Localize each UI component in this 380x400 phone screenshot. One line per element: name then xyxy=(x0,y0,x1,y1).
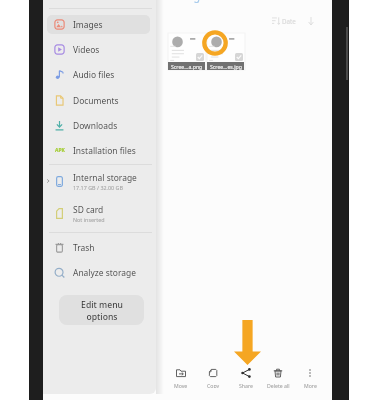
staticText: Installation files xyxy=(73,145,136,157)
button[interactable]: Selected xyxy=(235,53,243,61)
button[interactable]: Sort order xyxy=(272,16,296,26)
staticText: Downloads xyxy=(73,120,118,132)
staticText: Edit menu options xyxy=(81,299,123,322)
button[interactable]: SD card xyxy=(47,202,150,225)
staticText: Scree...a.png xyxy=(171,63,203,70)
staticText: Images xyxy=(175,0,211,3)
button[interactable]: Delete all xyxy=(262,366,294,388)
staticText: Date xyxy=(282,17,296,25)
staticText: Internal storage xyxy=(73,172,137,184)
staticText: Scree...es.jpg xyxy=(210,63,242,70)
button[interactable]: Selected xyxy=(168,33,206,70)
other: Sort order xyxy=(272,17,280,25)
staticText: Trash xyxy=(73,242,95,254)
button[interactable]: Trash xyxy=(47,238,150,257)
button[interactable]: Analyze storage xyxy=(47,263,150,282)
staticText: Analyze storage xyxy=(73,267,136,279)
button[interactable]: Images xyxy=(47,15,150,34)
staticText: APK xyxy=(55,147,65,154)
button[interactable]: Edit menu options xyxy=(59,295,144,325)
button[interactable]: APK xyxy=(47,141,150,160)
staticText: 17.17 GB / 32.00 GB xyxy=(73,184,124,191)
staticText: Videos xyxy=(73,44,100,56)
button[interactable]: Move xyxy=(165,366,197,388)
staticText: SD card xyxy=(73,204,104,216)
button[interactable]: Copy xyxy=(197,366,229,388)
button[interactable]: Selected xyxy=(196,53,204,61)
staticText: Not inserted xyxy=(73,216,105,223)
button[interactable]: Share xyxy=(230,366,262,388)
button[interactable]: Videos xyxy=(47,40,150,59)
staticText: Share xyxy=(239,382,253,388)
button[interactable]: Audio files xyxy=(47,65,150,84)
staticText: Delete all xyxy=(267,382,290,388)
button[interactable]: Sort descending xyxy=(307,17,315,25)
staticText: Documents xyxy=(73,95,119,107)
staticText: Move xyxy=(174,382,188,388)
other: Arrow pointing to Share xyxy=(234,320,261,365)
button[interactable]: Selected xyxy=(207,33,245,70)
staticText: More xyxy=(304,382,317,388)
staticText: Audio files xyxy=(73,69,115,81)
button[interactable]: Downloads xyxy=(47,116,150,135)
button[interactable]: Internal storage xyxy=(47,170,150,193)
button[interactable]: Documents xyxy=(47,91,150,110)
staticText: Copy xyxy=(207,382,220,388)
button[interactable]: More xyxy=(294,366,326,388)
staticText: Images xyxy=(73,19,103,31)
